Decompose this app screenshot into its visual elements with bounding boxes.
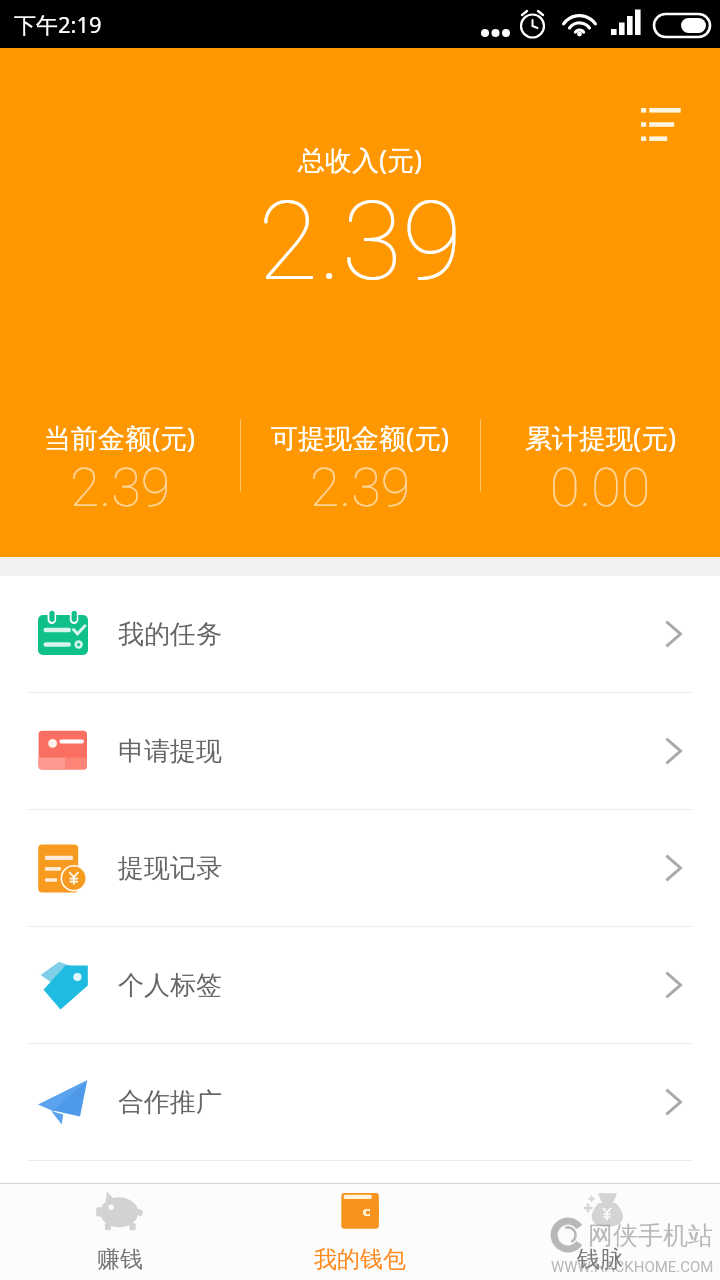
staticText: 个人标签: [118, 969, 222, 1002]
staticText: 合作推广: [118, 1086, 222, 1119]
staticText: WWW.HACKHOME.COM: [551, 1258, 714, 1276]
button[interactable]: 提现记录: [0, 810, 720, 926]
staticText: 0.00: [550, 456, 651, 519]
staticText: 当前金额(元): [44, 419, 196, 456]
staticText: 赚钱: [97, 1245, 143, 1274]
button[interactable]: 申请提现: [0, 693, 720, 809]
staticText: 2.39: [310, 456, 411, 519]
button[interactable]: 我的任务: [0, 576, 720, 692]
button[interactable]: 合作推广: [0, 1044, 720, 1160]
button[interactable]: List: [623, 90, 695, 150]
button[interactable]: 我的钱包: [240, 1184, 480, 1280]
button[interactable]: 个人标签: [0, 927, 720, 1043]
staticText: 2.39: [70, 456, 171, 519]
staticText: 下午2:19: [14, 9, 102, 39]
staticText: 钱脉: [577, 1245, 623, 1274]
staticText: 我的钱包: [314, 1245, 406, 1274]
staticText: 提现记录: [118, 852, 222, 885]
staticText: 网侠手机站: [588, 1220, 713, 1251]
button[interactable]: 赚钱: [0, 1184, 240, 1280]
staticText: 2.39: [258, 177, 463, 306]
staticText: 累计提现(元): [525, 419, 677, 456]
staticText: 可提现金额(元): [271, 419, 450, 456]
staticText: 申请提现: [118, 735, 222, 768]
staticText: 我的任务: [118, 618, 222, 651]
staticText: 总收入(元): [298, 141, 423, 178]
button[interactable]: 钱脉: [480, 1184, 720, 1280]
